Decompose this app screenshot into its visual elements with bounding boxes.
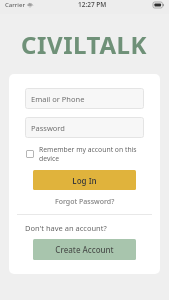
staticText: Forgot Password?	[55, 197, 115, 207]
staticText: Create Account	[55, 244, 114, 255]
staticText: Email or Phone	[31, 94, 85, 104]
button[interactable]: Create Account	[33, 239, 136, 260]
button[interactable]: Forgot Password?	[17, 197, 152, 207]
staticText: Password	[31, 123, 65, 133]
button[interactable]: Email or Phone	[25, 88, 144, 109]
staticText: CIVILTALK	[21, 28, 148, 61]
staticText: Don't have an account?	[25, 223, 107, 233]
staticText: Remember my account on this device	[39, 145, 143, 163]
button[interactable]: Remember my account on this device	[26, 145, 143, 163]
staticText: Carrier	[5, 1, 25, 9]
staticText: Log In	[72, 175, 97, 186]
staticText: 12:27 PM	[78, 0, 107, 9]
button[interactable]: Log In	[33, 170, 136, 190]
button[interactable]: Password	[25, 117, 144, 138]
